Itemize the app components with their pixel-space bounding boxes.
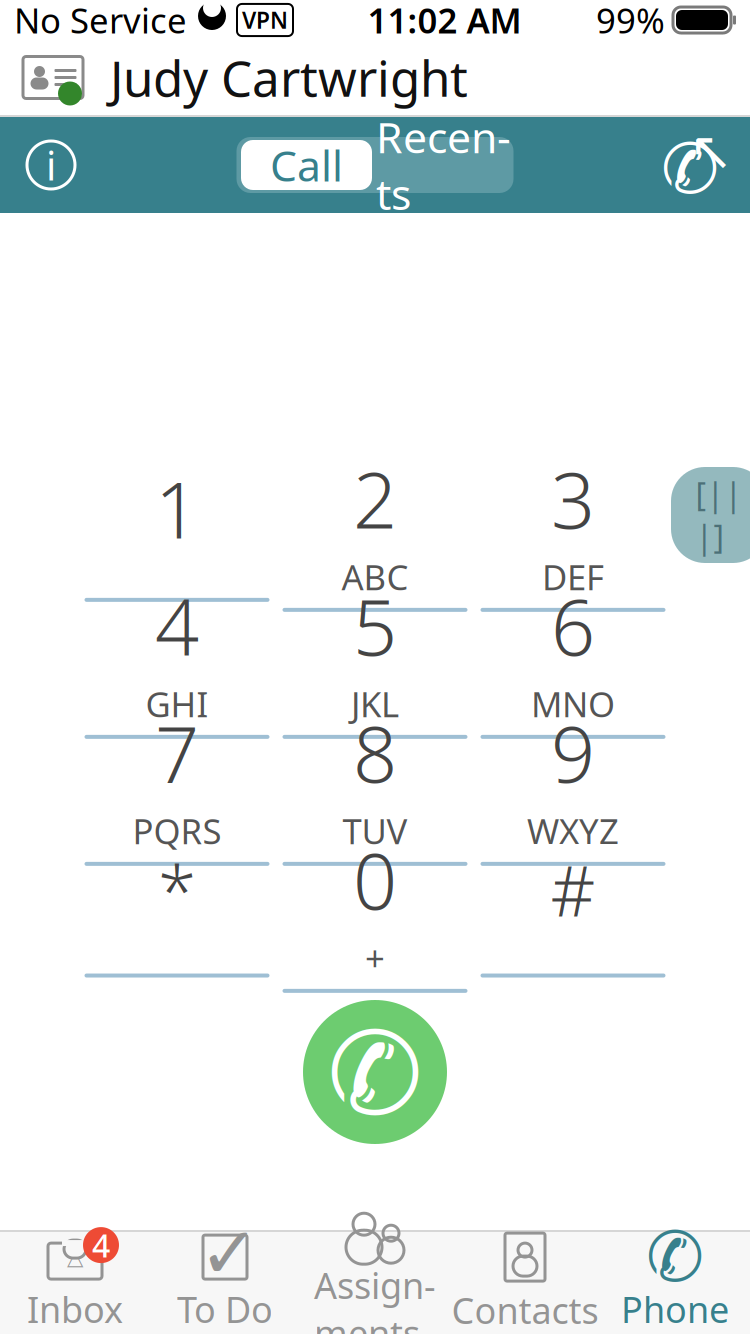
staticText: DEF bbox=[542, 554, 604, 600]
staticText: 6 bbox=[551, 574, 595, 677]
staticText: ↖ bbox=[688, 121, 733, 181]
button[interactable]: Recents bbox=[375, 137, 512, 193]
staticText: ✆ bbox=[646, 1218, 704, 1296]
staticText: 4 bbox=[92, 1224, 110, 1266]
staticText: MNO bbox=[531, 681, 615, 727]
button[interactable]: Information bbox=[24, 138, 78, 192]
button[interactable]: 9 bbox=[480, 715, 665, 842]
button[interactable]: 7 bbox=[84, 715, 269, 842]
button[interactable]: * bbox=[84, 842, 269, 969]
staticText: 0 bbox=[353, 828, 397, 931]
staticText: i bbox=[46, 138, 56, 191]
staticText: ✆ bbox=[661, 130, 719, 208]
staticText: Judy Cartwright bbox=[110, 45, 468, 110]
staticText: To Do bbox=[177, 1285, 273, 1333]
button[interactable]: # bbox=[480, 842, 665, 969]
staticText: ABC bbox=[341, 554, 408, 600]
button[interactable]: Call bbox=[303, 1000, 447, 1144]
staticText: VPN bbox=[242, 5, 288, 35]
button[interactable]: Assignments bbox=[300, 1233, 450, 1333]
staticText: 8 bbox=[353, 701, 397, 804]
staticText: GHI bbox=[145, 681, 208, 727]
staticText: [|||] bbox=[695, 472, 742, 557]
staticText: PQRS bbox=[132, 808, 221, 854]
staticText: Recents bbox=[376, 108, 511, 222]
button[interactable]: 6 bbox=[480, 588, 665, 715]
staticText: WXYZ bbox=[527, 808, 619, 854]
button[interactable]: 5 bbox=[282, 588, 467, 715]
button[interactable]: Call bbox=[238, 137, 375, 193]
staticText: 11:02 AM bbox=[367, 0, 521, 43]
staticText: ✆ bbox=[327, 1009, 423, 1139]
button[interactable]: Contacts bbox=[450, 1233, 600, 1333]
button[interactable]: Scan bbox=[688, 467, 750, 563]
button[interactable]: 8 bbox=[282, 715, 467, 842]
staticText: JKL bbox=[351, 681, 399, 727]
button[interactable]: 1 bbox=[84, 461, 269, 588]
button[interactable]: ✓ bbox=[150, 1233, 300, 1333]
staticText: Assignments bbox=[314, 1261, 436, 1334]
staticText: Inbox bbox=[27, 1285, 123, 1333]
staticText: 5 bbox=[353, 574, 397, 677]
staticText: Contacts bbox=[451, 1286, 598, 1334]
staticText: 3 bbox=[551, 447, 595, 550]
button[interactable]: Contact card bbox=[18, 52, 88, 102]
button[interactable]: 0 bbox=[282, 842, 467, 969]
button[interactable]: 3 bbox=[480, 461, 665, 588]
staticText: * bbox=[158, 843, 196, 936]
staticText: TUV bbox=[342, 808, 407, 854]
staticText: 2 bbox=[353, 447, 397, 550]
staticText: 99% bbox=[596, 0, 665, 43]
button[interactable]: ✆ bbox=[600, 1233, 750, 1333]
staticText: 1 bbox=[155, 457, 199, 560]
staticText: △ bbox=[67, 1245, 83, 1269]
button[interactable]: △ bbox=[0, 1233, 150, 1333]
staticText: # bbox=[550, 843, 595, 936]
staticText: + bbox=[365, 935, 385, 981]
button[interactable]: Outgoing call bbox=[664, 136, 726, 194]
staticText: 9 bbox=[551, 701, 595, 804]
staticText: 4 bbox=[155, 574, 199, 677]
staticText: No Service bbox=[14, 0, 187, 43]
staticText: 7 bbox=[155, 701, 199, 804]
staticText: Phone bbox=[621, 1285, 729, 1333]
button[interactable]: 4 bbox=[84, 588, 269, 715]
staticText: ✓ bbox=[199, 1212, 259, 1294]
button[interactable]: 2 bbox=[282, 461, 467, 588]
staticText: Call bbox=[270, 137, 343, 193]
